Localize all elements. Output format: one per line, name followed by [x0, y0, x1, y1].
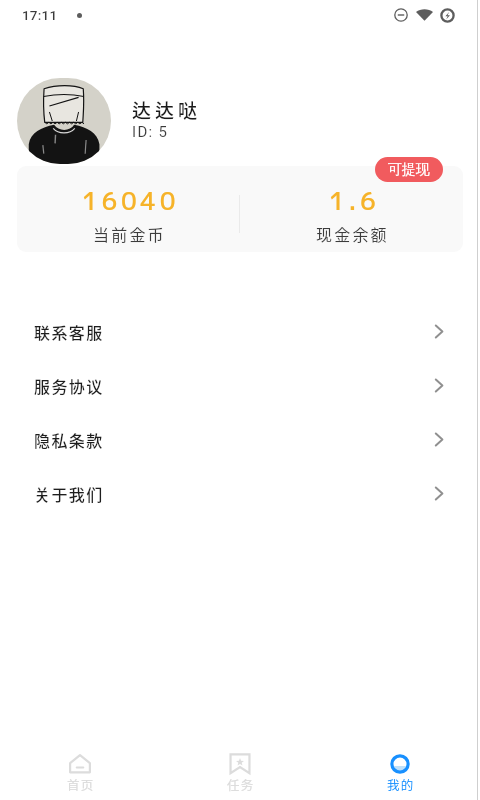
staticText: 服务协议 [34, 374, 104, 397]
staticText: 首页 [67, 775, 95, 793]
button[interactable]: 关于我们 [0, 466, 480, 520]
staticText: 可提现 [388, 161, 430, 179]
staticText: 当前金币 [93, 222, 166, 245]
staticText: ID: 5 [132, 123, 169, 141]
button[interactable]: 隐私条款 [0, 412, 480, 466]
button[interactable]: 任务 [160, 740, 320, 800]
staticText: 现金余额 [316, 222, 389, 245]
staticText: 我的 [387, 775, 415, 793]
button[interactable]: 首页 [0, 740, 160, 800]
staticText: 16040 [82, 183, 180, 218]
staticText: 17:11 [22, 7, 58, 23]
staticText: 关于我们 [34, 482, 104, 505]
staticText: 隐私条款 [34, 428, 104, 451]
button[interactable]: 服务协议 [0, 358, 480, 412]
button[interactable]: 可提现 [375, 157, 443, 182]
button[interactable]: 联系客服 [0, 304, 480, 358]
staticText: 联系客服 [34, 320, 104, 343]
staticText: 达达哒 [132, 96, 202, 124]
staticText: 任务 [227, 775, 255, 793]
staticText: 1.6 [329, 183, 380, 218]
button[interactable]: 我的 [320, 740, 480, 800]
